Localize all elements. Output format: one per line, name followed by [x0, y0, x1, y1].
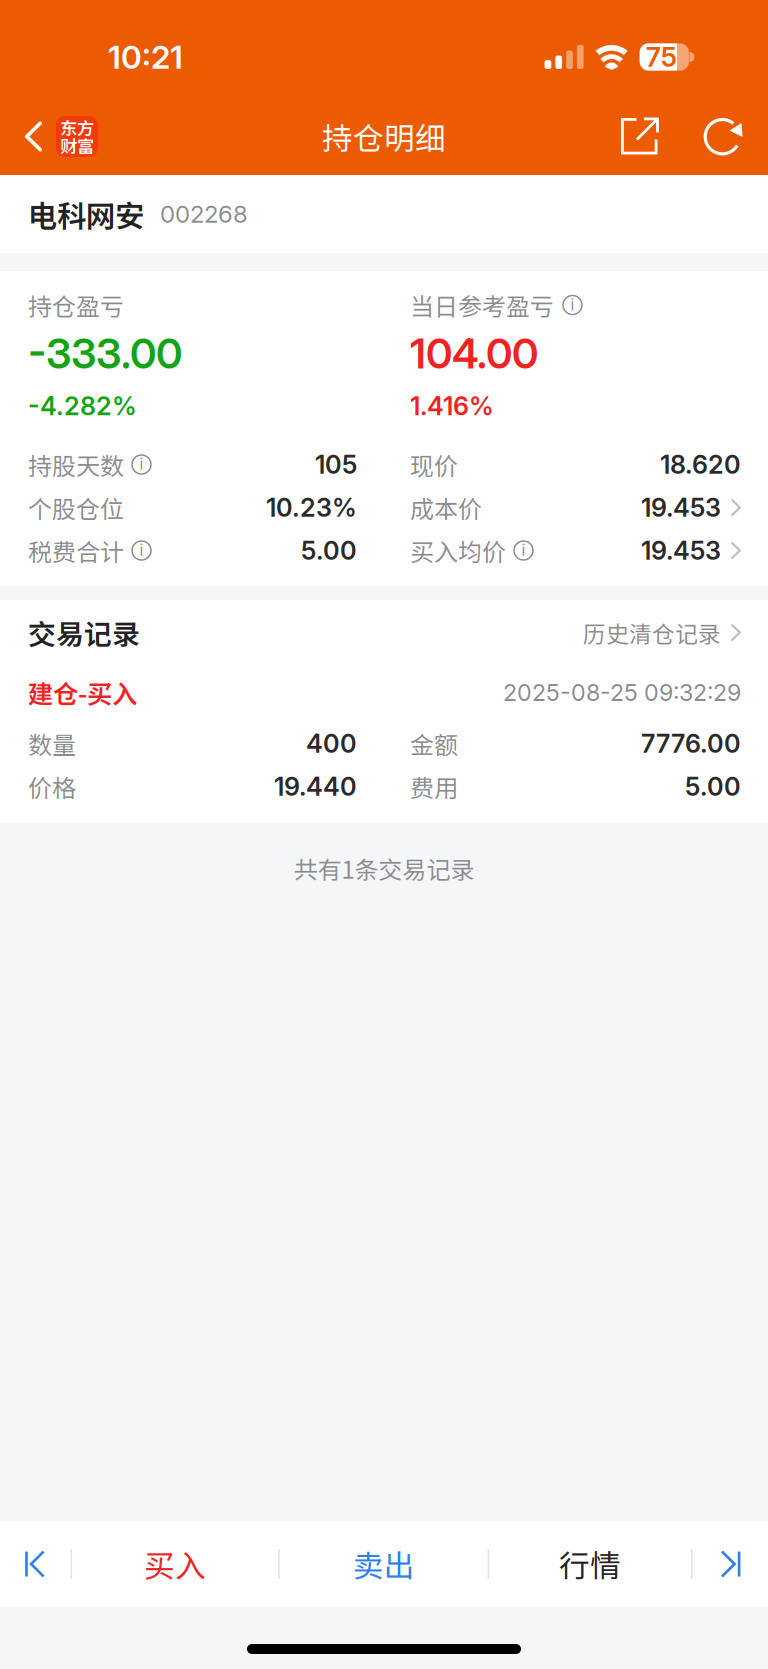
staticText: 共有1条交易记录 [293, 851, 474, 886]
staticText: 1.416% [410, 391, 494, 421]
staticText: 买入均价 [410, 533, 506, 568]
staticText: 2025-08-25 09:32:29 [503, 678, 741, 707]
staticText: 成本价 [410, 490, 482, 525]
button[interactable]: Last page [692, 1521, 768, 1607]
staticText: 个股仓位 [28, 490, 124, 525]
staticText: 费用 [410, 769, 458, 804]
staticText: 财富 [60, 133, 94, 158]
staticText: -333.00 [28, 328, 182, 378]
staticText: 002268 [160, 199, 248, 228]
staticText: 建仓-买入 [28, 674, 137, 711]
staticText: 18.620 [660, 449, 741, 480]
staticText: 税费合计 [28, 533, 124, 568]
staticText: 当日参考盈亏 [410, 288, 554, 322]
staticText: 金额 [410, 726, 458, 761]
button[interactable]: 东方 [0, 98, 98, 175]
staticText: 7776.00 [641, 728, 741, 759]
staticText: 104.00 [410, 328, 538, 378]
staticText: 持仓盈亏 [28, 288, 124, 322]
button[interactable]: Share [608, 98, 690, 175]
staticText: 19.453 [641, 492, 721, 523]
staticText: 历史清仓记录 [583, 616, 721, 649]
staticText: 10.23% [266, 492, 357, 523]
button[interactable]: 历史清仓记录 [583, 616, 741, 649]
staticText: -4.282% [28, 391, 137, 421]
staticText: i [570, 295, 574, 314]
staticText: 买入 [144, 1542, 206, 1586]
staticText: 现价 [410, 447, 458, 482]
staticText: 东方 [60, 115, 94, 140]
staticText: 5.00 [685, 771, 741, 802]
staticText: i [139, 540, 143, 559]
staticText: 价格 [28, 769, 76, 804]
staticText: 75 [646, 41, 677, 73]
staticText: 行情 [559, 1542, 621, 1586]
staticText: 19.440 [274, 771, 357, 802]
button[interactable]: Refresh [690, 98, 757, 175]
button[interactable]: 买入 [72, 1521, 278, 1607]
staticText: 5.00 [301, 535, 357, 566]
button[interactable]: First page [0, 1521, 70, 1607]
staticText: 400 [306, 728, 357, 759]
button[interactable]: 行情 [489, 1521, 691, 1607]
staticText: 电科网安 [28, 193, 144, 235]
staticText: 10:21 [108, 38, 183, 76]
staticText: 卖出 [353, 1542, 415, 1586]
staticText: 19.453 [641, 535, 721, 566]
staticText: 交易记录 [28, 612, 140, 653]
staticText: 持股天数 [28, 447, 124, 482]
staticText: i [521, 540, 525, 559]
staticText: 105 [315, 449, 357, 480]
staticText: 持仓明细 [322, 114, 446, 159]
staticText: i [139, 454, 143, 473]
staticText: 数量 [28, 726, 76, 761]
button[interactable]: 卖出 [280, 1521, 488, 1607]
